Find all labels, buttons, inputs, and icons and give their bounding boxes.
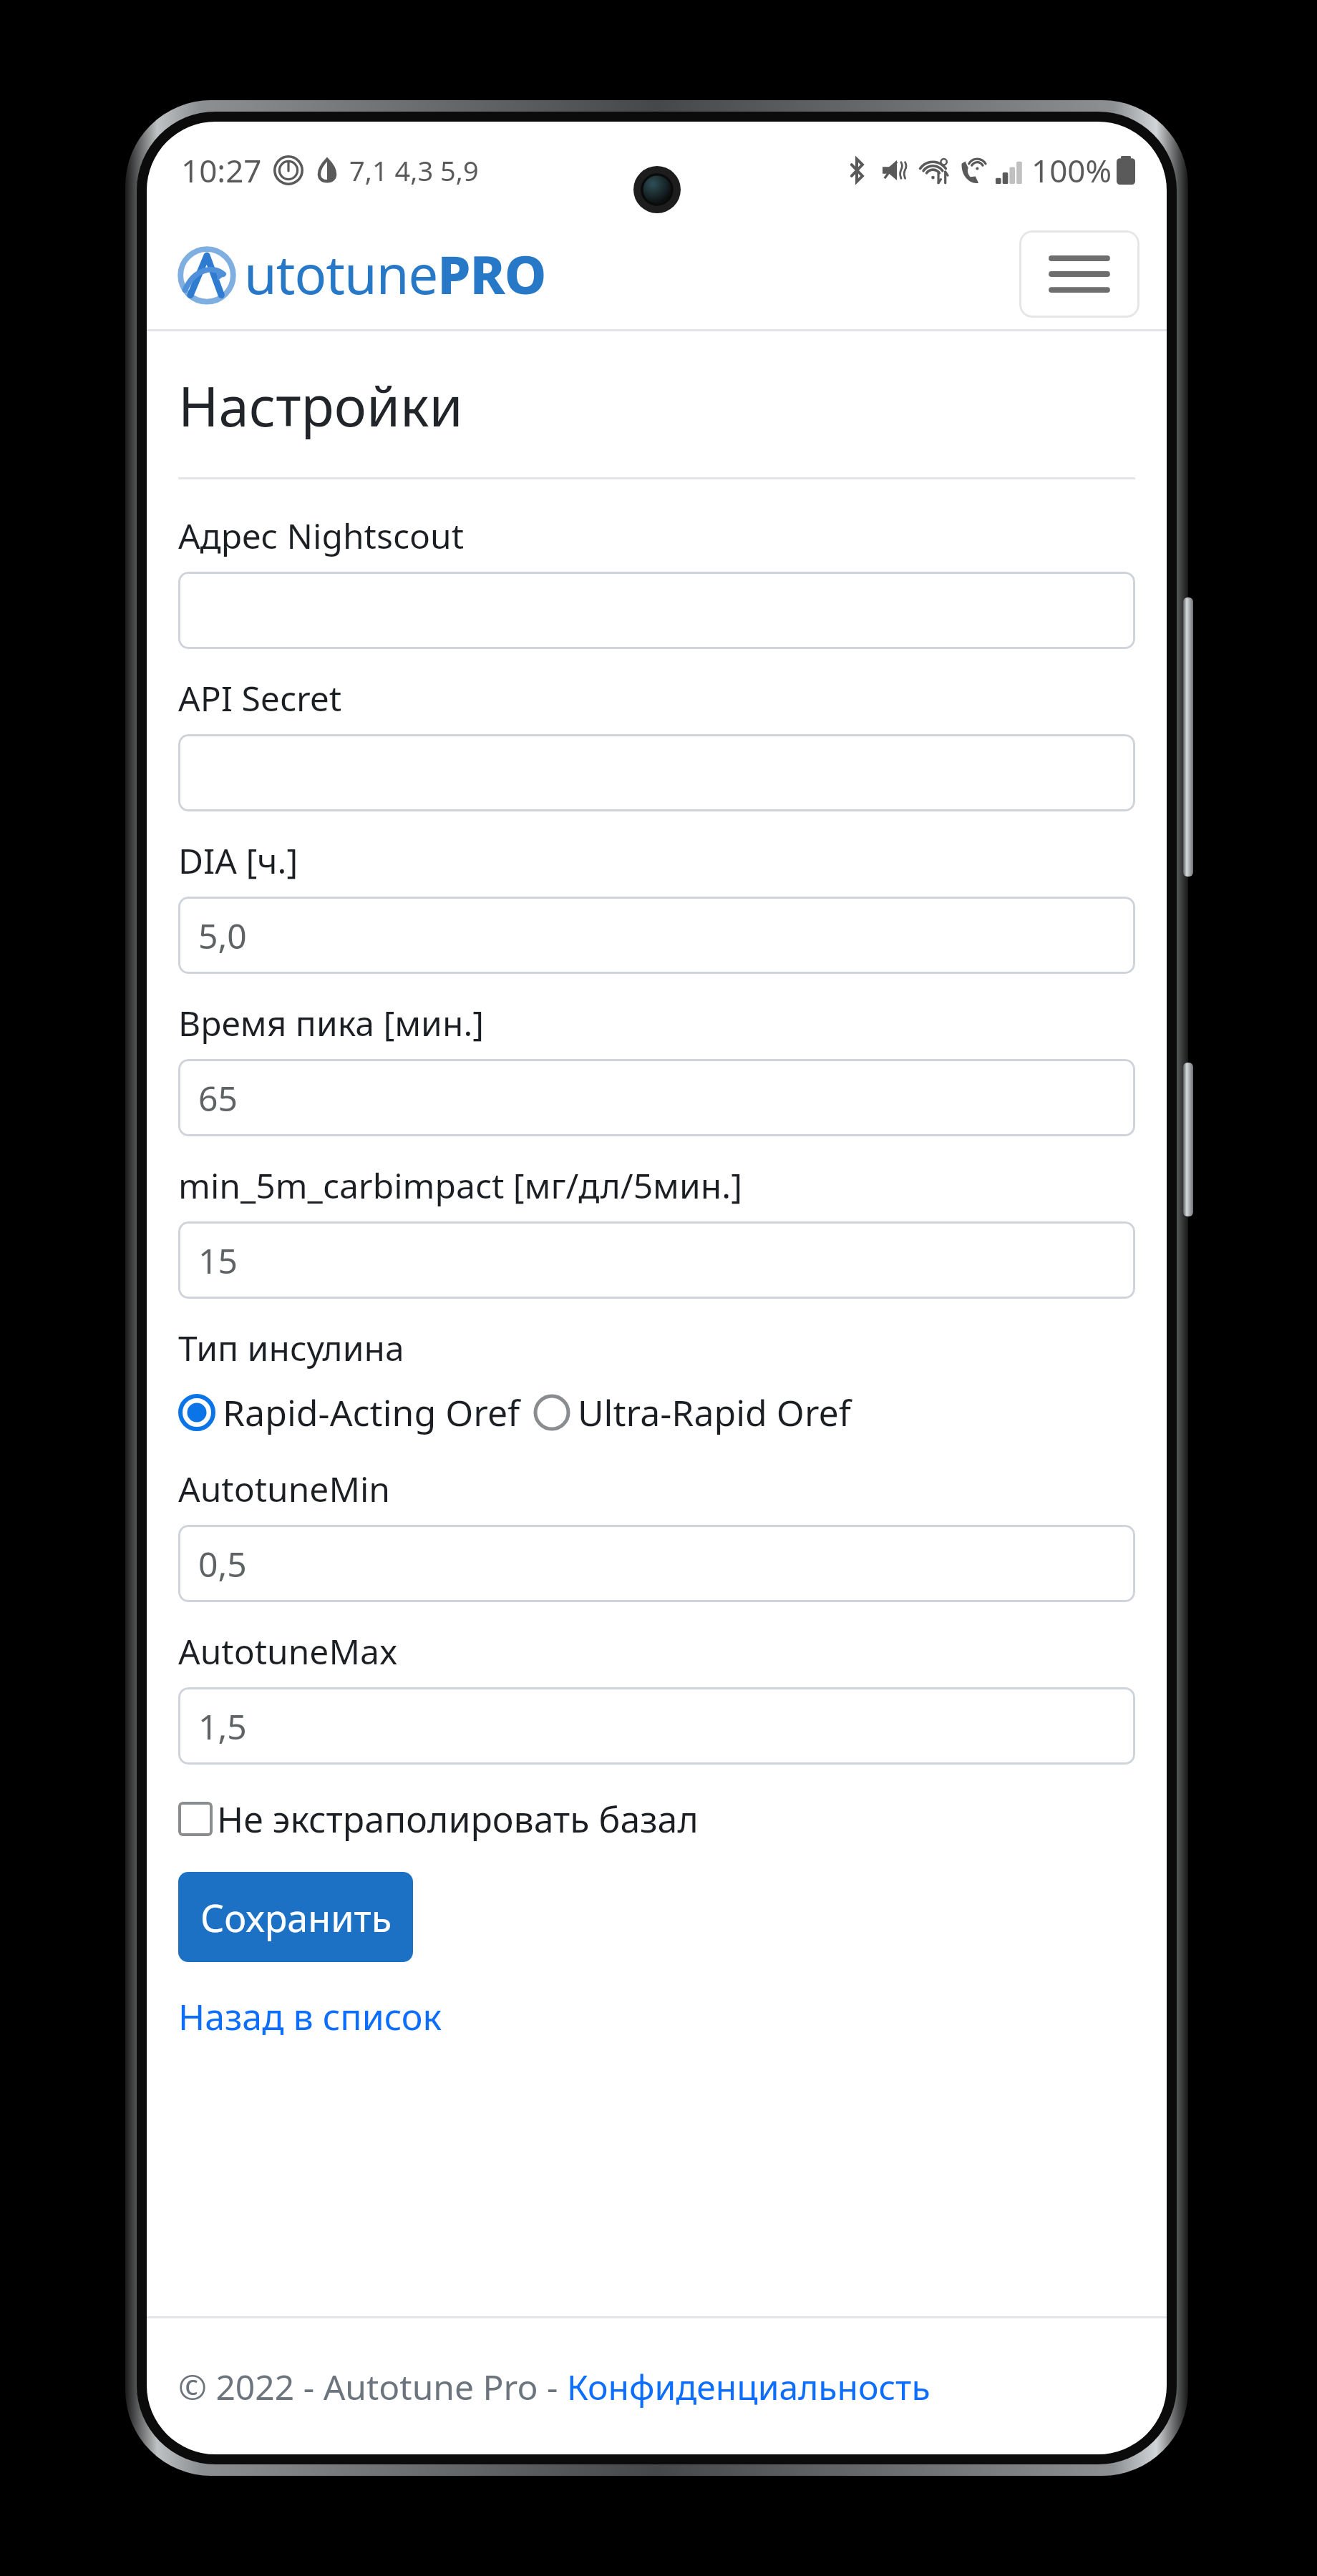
- button[interactable]: [178, 572, 1135, 649]
- staticText: utotunePRO: [244, 238, 546, 310]
- staticText: Время пика [мин.]: [178, 1000, 485, 1046]
- button[interactable]: 0,5: [178, 1525, 1135, 1602]
- button[interactable]: Сохранить: [178, 1872, 413, 1962]
- button[interactable]: Назад в список: [178, 1992, 442, 2041]
- staticText: 15: [198, 1237, 238, 1284]
- staticText: 0,5: [198, 1541, 247, 1587]
- button[interactable]: 1,5: [178, 1687, 1135, 1765]
- button[interactable]: Menu: [1019, 230, 1139, 318]
- staticText: © 2022 - Autotune Pro -: [178, 2363, 567, 2410]
- staticText: 7,1 4,3 5,9: [349, 152, 479, 189]
- staticText: Rapid-Acting Oref: [223, 1388, 520, 1437]
- staticText: Конфиденциальность: [567, 2363, 930, 2410]
- button[interactable]: Ultra-Rapid Oref: [533, 1388, 851, 1437]
- button[interactable]: Не экстраполировать базал: [178, 1795, 699, 1843]
- button[interactable]: 15: [178, 1221, 1135, 1299]
- staticText: Ultra-Rapid Oref: [578, 1388, 851, 1437]
- staticText: Назад в список: [178, 1992, 442, 2041]
- staticText: Сохранить: [200, 1892, 392, 1943]
- staticText: min_5m_carbimpact [мг/дл/5мин.]: [178, 1162, 742, 1209]
- button[interactable]: 5,0: [178, 897, 1135, 974]
- button[interactable]: [178, 734, 1135, 811]
- button[interactable]: Конфиденциальность: [567, 2363, 930, 2410]
- staticText: Не экстраполировать базал: [217, 1795, 699, 1843]
- button[interactable]: Rapid-Acting Oref: [178, 1388, 520, 1437]
- staticText: DIA [ч.]: [178, 837, 298, 884]
- staticText: 1,5: [198, 1703, 247, 1750]
- staticText: 5,0: [198, 912, 247, 959]
- staticText: AutotuneMin: [178, 1465, 391, 1512]
- staticText: AutotuneMax: [178, 1628, 398, 1674]
- staticText: 10:27: [181, 149, 262, 192]
- staticText: Настройки: [178, 369, 463, 443]
- staticText: Адрес Nightscout: [178, 512, 464, 559]
- staticText: 65: [198, 1075, 238, 1121]
- button[interactable]: 65: [178, 1059, 1135, 1136]
- staticText: Тип инсулина: [178, 1324, 404, 1371]
- staticText: 100%: [1031, 149, 1112, 192]
- staticText: API Secret: [178, 675, 342, 721]
